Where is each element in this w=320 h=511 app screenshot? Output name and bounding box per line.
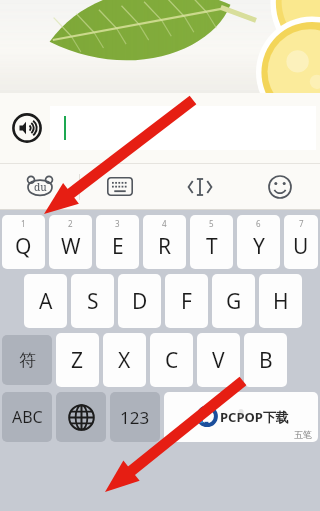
staticText: 1 (21, 218, 26, 229)
button[interactable]: Z (56, 333, 99, 387)
staticText: 五笔 (294, 429, 312, 440)
button[interactable]: 123 (110, 392, 160, 442)
staticText: C (165, 346, 179, 375)
staticText: 符 (19, 350, 36, 371)
staticText: B (259, 346, 273, 375)
staticText: E (112, 232, 124, 261)
staticText: 123 (120, 406, 150, 429)
staticText: S (87, 287, 99, 316)
staticText: 5 (209, 218, 214, 229)
staticText: 6 (256, 218, 261, 229)
staticText: du (34, 180, 47, 194)
staticText: W (61, 232, 81, 261)
staticText: X (118, 346, 131, 375)
button[interactable]: Keyboard layout (80, 163, 160, 210)
staticText: 7 (299, 218, 304, 229)
staticText: 4 (162, 218, 167, 229)
button[interactable] (50, 106, 316, 150)
button[interactable]: A (24, 274, 67, 328)
staticText: D (132, 287, 148, 316)
button[interactable]: B (244, 333, 287, 387)
button[interactable]: S (71, 274, 114, 328)
button[interactable]: D (118, 274, 161, 328)
staticText: Q (15, 232, 32, 261)
button[interactable]: 7 (284, 215, 318, 269)
button[interactable]: 1 (2, 215, 45, 269)
button[interactable]: H (259, 274, 302, 328)
staticText: T (206, 232, 218, 261)
button[interactable]: 3 (96, 215, 139, 269)
button[interactable]: 2 (49, 215, 92, 269)
staticText: 3 (115, 218, 120, 229)
button[interactable]: Baidu input (0, 163, 79, 210)
button[interactable]: C (150, 333, 193, 387)
button[interactable]: V (197, 333, 240, 387)
staticText: Z (71, 346, 84, 375)
button[interactable]: 6 (237, 215, 280, 269)
button[interactable]: 5 (190, 215, 233, 269)
button[interactable]: ABC (2, 392, 52, 442)
button[interactable]: Voice input (7, 108, 47, 148)
staticText: U (293, 232, 309, 261)
button[interactable]: G (212, 274, 255, 328)
button[interactable]: 符 (2, 335, 52, 385)
staticText: Y (253, 232, 265, 261)
staticText: PCPOP下载 (220, 408, 289, 426)
staticText: H (273, 287, 289, 316)
button[interactable]: F (165, 274, 208, 328)
staticText: F (181, 287, 192, 316)
staticText: G (226, 287, 242, 316)
button[interactable]: 4 (143, 215, 186, 269)
staticText: R (158, 232, 172, 261)
button[interactable]: Switch language (56, 392, 106, 442)
staticText: V (212, 346, 225, 375)
staticText: A (39, 287, 53, 316)
button[interactable]: Move cursor (160, 163, 240, 210)
staticText: ABC (12, 406, 43, 428)
staticText: 2 (68, 218, 73, 229)
button[interactable]: X (103, 333, 146, 387)
button[interactable]: Emoji (240, 163, 320, 210)
button[interactable]: Space (164, 392, 318, 442)
